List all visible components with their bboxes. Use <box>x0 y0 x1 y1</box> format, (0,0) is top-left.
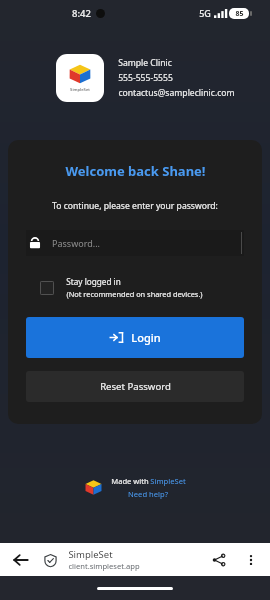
staticText: Password... <box>52 237 100 249</box>
staticText: Stay logged in <box>66 276 121 287</box>
button[interactable]: Login <box>26 317 244 358</box>
staticText: Login <box>131 330 161 345</box>
staticText: client.simpleset.app <box>68 561 140 571</box>
button[interactable]: Need help? <box>128 489 168 499</box>
button[interactable]: Back <box>8 547 34 573</box>
staticText: Welcome back Shane! <box>65 162 206 180</box>
staticText: Reset Password <box>100 380 171 393</box>
staticText: SimpleSet <box>70 87 90 93</box>
staticText: To continue, please enter your password: <box>52 200 218 212</box>
staticText: Sample Clinic <box>118 57 172 69</box>
staticText: SimpleSet <box>150 476 186 486</box>
button[interactable]: Share <box>206 547 232 573</box>
staticText: 5G <box>199 7 211 19</box>
staticText: (Not recommended on shared devices.) <box>66 289 203 299</box>
button[interactable]: More options <box>238 547 264 573</box>
staticText: Made with <box>110 476 150 486</box>
staticText: 85 <box>235 9 244 19</box>
button[interactable]: Password <box>26 230 244 256</box>
button[interactable]: Stay logged in <box>26 276 244 299</box>
staticText: Need help? <box>128 489 168 499</box>
staticText: 8:42 <box>72 7 91 20</box>
other: Secure connection <box>40 550 60 570</box>
button[interactable]: Reset Password <box>26 371 244 402</box>
staticText: 555-555-5555 <box>118 72 173 84</box>
other: Password <box>28 236 42 250</box>
staticText: SimpleSet <box>68 548 113 561</box>
staticText: contactus@sampleclinic.com <box>118 87 235 99</box>
